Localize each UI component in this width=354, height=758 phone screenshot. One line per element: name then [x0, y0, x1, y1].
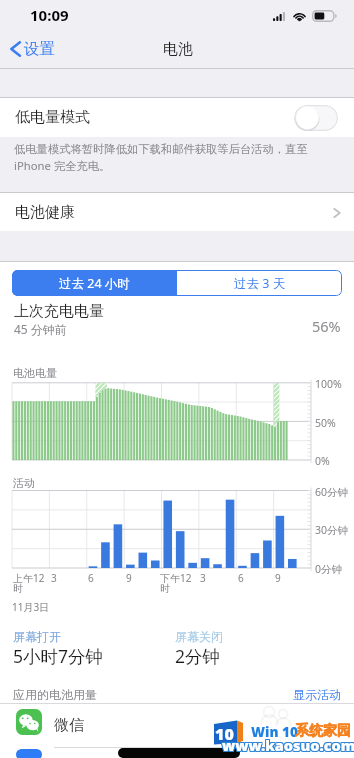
staticText: 5小时7分钟: [13, 644, 104, 668]
staticText: www.kaosuo.com: [223, 734, 354, 754]
staticText: 微信: [54, 716, 84, 735]
staticText: 低电量模式将暂时降低如下载和邮件获取等后台活动，直至 iPhone 完全充电。: [14, 142, 308, 174]
staticText: 3: [51, 571, 57, 585]
staticText: www.kaosuo.com: [222, 736, 354, 756]
staticText: www.kaosuo.com: [221, 735, 354, 755]
staticText: 系统家园: [295, 722, 351, 740]
staticText: 45 分钟前: [14, 321, 67, 337]
staticText: 过去 3 天: [234, 275, 286, 292]
button[interactable]: 设置: [0, 35, 65, 63]
staticText: 9: [275, 571, 281, 585]
staticText: 活动: [13, 476, 35, 490]
staticText: 电池健康: [15, 203, 75, 222]
staticText: www.kaosuo.com: [221, 734, 354, 754]
staticText: 9: [126, 571, 132, 585]
staticText: 低电量模式: [15, 108, 90, 127]
staticText: 电池: [163, 40, 193, 59]
staticText: 6: [238, 571, 244, 585]
staticText: 电池电量: [13, 366, 57, 380]
staticText: 56%: [312, 316, 341, 336]
button[interactable]: 过去 24 小时: [12, 270, 177, 296]
staticText: 100%: [315, 377, 342, 391]
staticText: 屏幕打开: [13, 629, 61, 644]
staticText: 过去 24 小时: [59, 275, 130, 292]
staticText: 11月3日: [12, 600, 50, 614]
staticText: 30分钟: [315, 523, 349, 537]
button[interactable]: [0, 747, 354, 758]
staticText: 10: [215, 723, 234, 745]
staticText: 0%: [315, 454, 330, 468]
staticText: www.kaosuo.com: [221, 736, 354, 756]
staticText: 0分钟: [315, 562, 343, 576]
staticText: www.kaosuo.com: [223, 735, 354, 755]
staticText: 2分钟: [175, 644, 221, 668]
staticText: 60分钟: [315, 485, 349, 499]
staticText: 上次充电电量: [14, 302, 104, 321]
staticText: 应用的电池用量: [13, 687, 97, 702]
button[interactable]: 微信: [0, 704, 354, 747]
button[interactable]: 低电量模式开关: [294, 105, 338, 131]
staticText: 50%: [315, 416, 336, 430]
button[interactable]: 过去 3 天: [177, 270, 342, 296]
staticText: 设置: [24, 39, 55, 59]
button[interactable]: 电池健康: [0, 193, 354, 232]
staticText: 下午12 时: [160, 571, 192, 595]
staticText: 3: [200, 571, 206, 585]
staticText: www.kaosuo.com: [222, 734, 354, 754]
button[interactable]: 显示活动: [293, 687, 354, 702]
staticText: 屏幕关闭: [175, 629, 223, 644]
staticText: www.kaosuo.com: [222, 735, 354, 755]
other: 电池健康: [333, 206, 341, 220]
staticText: 显示活动: [293, 687, 341, 702]
staticText: www.kaosuo.com: [223, 736, 354, 756]
staticText: 10:09: [30, 5, 69, 25]
staticText: Win 10: [251, 723, 298, 741]
staticText: 上午12 时: [13, 571, 45, 595]
button[interactable]: 低电量模式: [0, 98, 354, 137]
staticText: 6: [88, 571, 94, 585]
